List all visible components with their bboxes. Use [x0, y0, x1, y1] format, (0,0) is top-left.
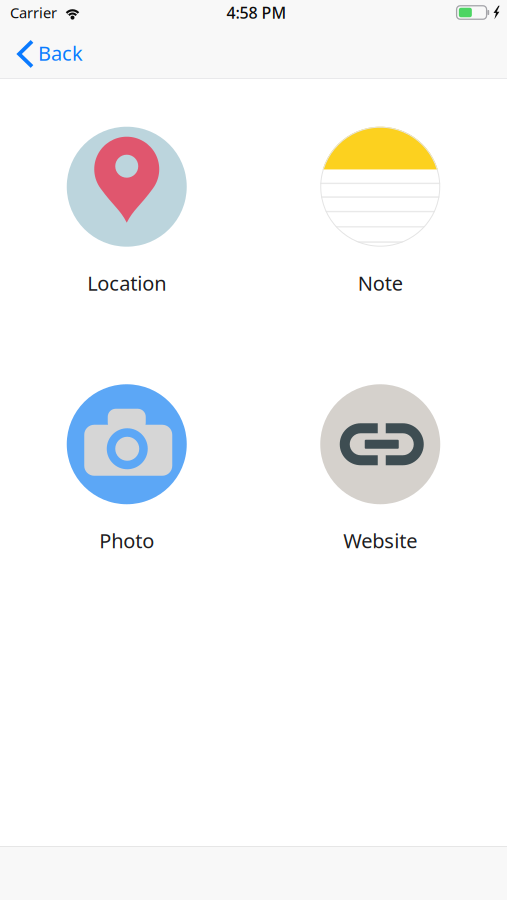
button[interactable]: Note: [253, 127, 507, 300]
button[interactable]: Location: [0, 127, 253, 300]
staticText: 4:58 PM: [226, 2, 286, 23]
staticText: Carrier: [10, 3, 57, 22]
staticText: Photo: [99, 527, 154, 554]
button[interactable]: Photo: [0, 384, 253, 558]
button[interactable]: Website: [253, 384, 507, 558]
staticText: Location: [87, 270, 166, 296]
staticText: Back: [38, 40, 83, 66]
staticText: Note: [358, 270, 403, 296]
staticText: Website: [343, 527, 417, 554]
button[interactable]: Back: [0, 30, 95, 78]
